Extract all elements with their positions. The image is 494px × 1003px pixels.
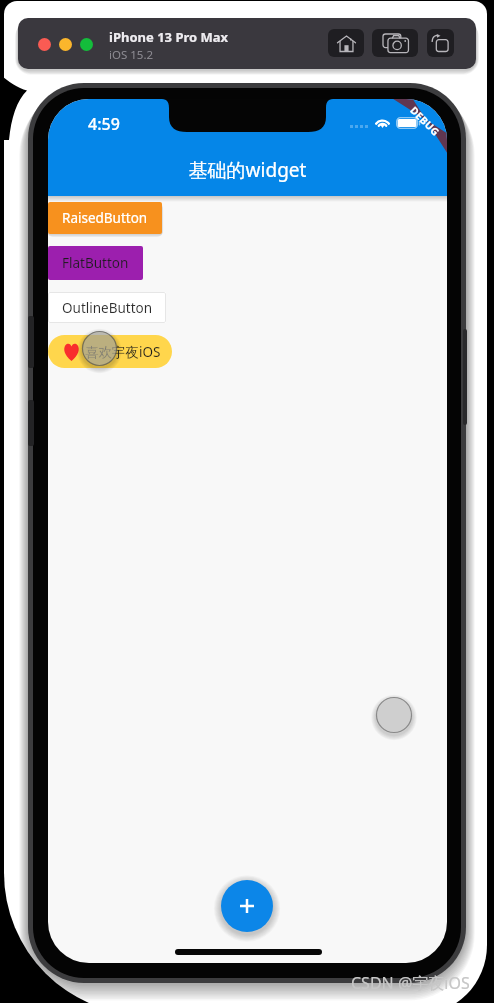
staticText: 喜欢宇夜iOS xyxy=(85,343,161,361)
button[interactable]: 喜欢宇夜iOS xyxy=(48,335,172,368)
staticText: 4:59 xyxy=(88,113,120,135)
staticText: FlatButton xyxy=(62,254,129,272)
button[interactable]: RaisedButton xyxy=(48,202,162,234)
button[interactable]: Home xyxy=(328,29,364,57)
button[interactable]: OutlineButton xyxy=(48,292,166,323)
staticText: RaisedButton xyxy=(62,209,148,227)
staticText: CSDN @宇夜iOS xyxy=(351,972,470,994)
staticText: OutlineButton xyxy=(62,299,153,317)
button[interactable]: Add xyxy=(221,880,273,932)
staticText: 基础的widget xyxy=(48,157,447,183)
staticText: iOS 15.2 xyxy=(109,47,154,63)
button[interactable] xyxy=(80,38,93,51)
staticText: iPhone 13 Pro Max xyxy=(109,28,229,46)
button[interactable] xyxy=(59,38,72,51)
button[interactable] xyxy=(38,38,51,51)
button[interactable]: Rotate xyxy=(427,29,454,57)
button[interactable]: Screenshot xyxy=(372,29,418,57)
button[interactable]: FlatButton xyxy=(48,246,143,280)
